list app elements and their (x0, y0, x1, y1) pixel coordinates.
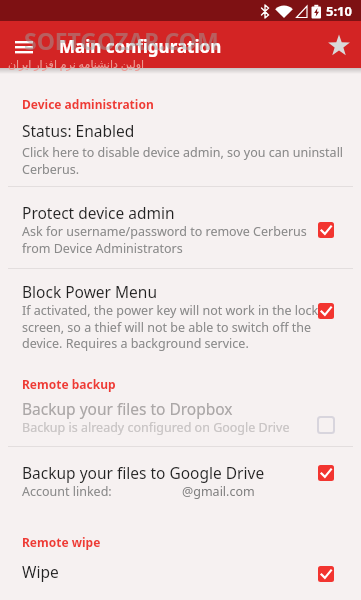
staticText: Main configuration (59, 35, 222, 58)
staticText: Backup your files to Google Drive (22, 462, 265, 483)
staticText: Block Power Menu (22, 281, 157, 302)
staticText: Account linked: (22, 483, 112, 500)
button[interactable]: Backup your files to Google Drive (0, 448, 361, 510)
staticText: Device administration (22, 96, 154, 112)
button[interactable]: Block Power Menu (0, 269, 361, 365)
staticText: Backup your files to Dropbox (22, 398, 233, 419)
button[interactable] (6, 27, 42, 63)
button[interactable]: Protect device admin (0, 188, 361, 268)
staticText: Ask for username/password to remove Cerb… (22, 223, 307, 256)
staticText: SOFTGOZAR.COM (24, 25, 219, 56)
button[interactable] (322, 29, 356, 63)
staticText: @gmail.com (182, 483, 255, 500)
staticText: Remote backup (22, 376, 116, 392)
staticText: Wipe (22, 561, 59, 582)
staticText: If activated, the power key will not wor… (22, 302, 319, 351)
staticText: Status: Enabled (22, 120, 135, 141)
staticText: 5:10 (326, 2, 352, 20)
staticText: Backup is already configured on Google D… (22, 419, 290, 436)
staticText: Protect device admin (22, 202, 175, 223)
staticText: اولین دانشنامه نرم افزار ایران (8, 56, 145, 71)
button[interactable]: Backup your files to Dropbox (0, 396, 361, 446)
staticText: Click here to disable device admin, so y… (22, 144, 344, 177)
button[interactable]: Wipe (0, 558, 361, 600)
staticText: Remote wipe (22, 534, 101, 550)
button[interactable]: Status: Enabled (0, 115, 361, 187)
